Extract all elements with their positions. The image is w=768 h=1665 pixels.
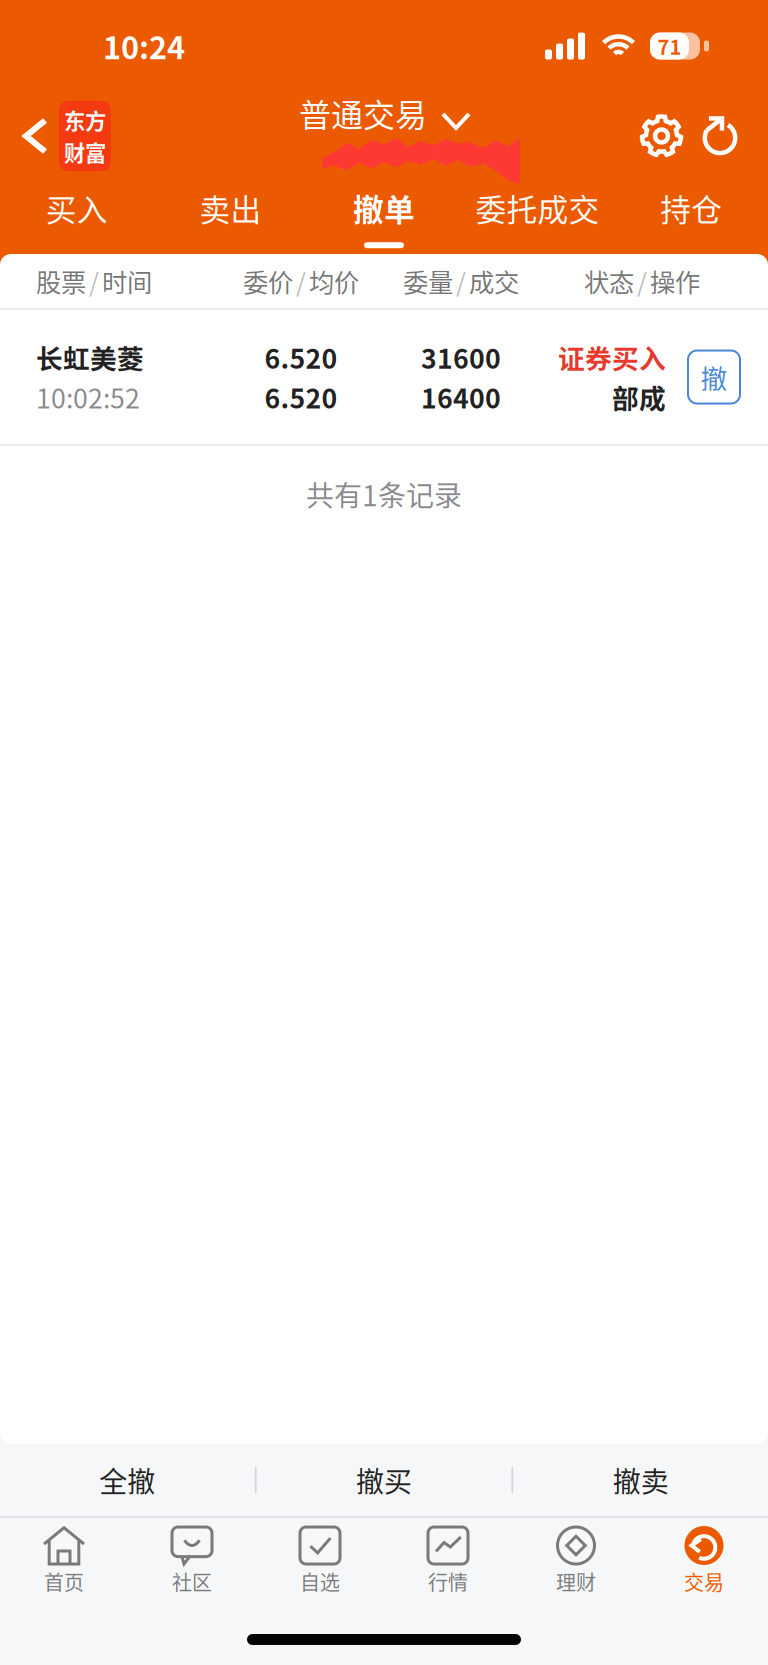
staticText: 16400 [421, 377, 501, 416]
button[interactable]: 撤单 [307, 180, 461, 254]
staticText: 交易 [684, 1567, 724, 1596]
button[interactable]: 撤卖 [513, 1444, 768, 1516]
staticText: 自选 [300, 1567, 340, 1596]
staticText: 撤单 [353, 186, 415, 230]
staticText: 首页 [44, 1567, 84, 1596]
staticText: 委量 [403, 263, 453, 299]
staticText: / [637, 263, 647, 299]
staticText: 31600 [421, 338, 501, 376]
staticText: 东方 [64, 105, 106, 135]
button[interactable]: 行情 [384, 1518, 512, 1614]
staticText: 时间 [102, 263, 152, 299]
staticText: 证券买入 [558, 338, 666, 376]
staticText: 撤 [700, 358, 727, 396]
staticText: 6.520 [264, 338, 337, 376]
staticText: 普通交易 [299, 90, 427, 136]
staticText: / [296, 263, 306, 299]
staticText: 社区 [172, 1567, 212, 1596]
staticText: 10:24 [103, 24, 185, 68]
staticText: 71 [657, 31, 681, 60]
button[interactable]: 自选 [256, 1518, 384, 1614]
button[interactable]: 设置 [632, 92, 691, 180]
button[interactable]: 理财 [512, 1518, 640, 1614]
staticText: 操作 [650, 263, 700, 299]
staticText: 成交 [469, 263, 519, 299]
staticText: 部成 [612, 377, 666, 416]
button[interactable]: 卖出 [154, 180, 307, 254]
button[interactable]: 交易 [640, 1518, 768, 1614]
button[interactable]: 全撤 [0, 1444, 255, 1516]
button[interactable]: 刷新 [691, 92, 749, 180]
staticText: 行情 [428, 1567, 468, 1596]
staticText: 全撤 [99, 1460, 155, 1500]
button[interactable]: 普通交易 [291, 88, 477, 138]
button[interactable]: 撤 [688, 350, 740, 403]
staticText: 财富 [64, 136, 106, 167]
staticText: / [456, 263, 466, 299]
button[interactable]: 首页 [0, 1518, 128, 1614]
staticText: 买入 [46, 186, 108, 230]
staticText: 理财 [556, 1567, 596, 1596]
button[interactable]: 持仓 [614, 180, 768, 254]
button[interactable]: 东方 [0, 92, 123, 180]
staticText: 撤买 [356, 1460, 412, 1500]
staticText: 共有1条记录 [306, 474, 462, 514]
staticText: 长虹美菱 [36, 338, 144, 376]
staticText: 持仓 [660, 186, 722, 230]
staticText: 10:02:52 [36, 377, 140, 416]
staticText: 委托成交 [476, 186, 600, 230]
staticText: 撤卖 [613, 1460, 669, 1500]
staticText: 卖出 [199, 186, 261, 230]
button[interactable]: 社区 [128, 1518, 256, 1614]
button[interactable]: 撤买 [257, 1444, 511, 1516]
staticText: / [89, 263, 99, 299]
staticText: 均价 [309, 263, 359, 299]
button[interactable]: 委托成交 [461, 180, 614, 254]
staticText: 委价 [243, 263, 293, 299]
button[interactable]: 买入 [0, 180, 154, 254]
staticText: 股票 [36, 263, 86, 299]
staticText: 6.520 [264, 377, 337, 416]
staticText: 状态 [584, 263, 634, 299]
